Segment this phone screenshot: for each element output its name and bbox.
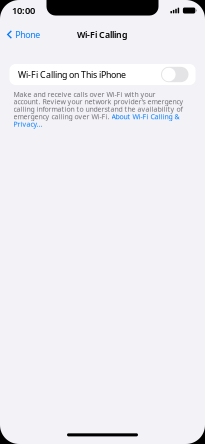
button[interactable]: Wi-Fi Calling on This iPhone <box>9 64 195 85</box>
staticText: Wi-Fi Calling <box>77 28 128 40</box>
staticText: Wi-Fi Calling on This iPhone <box>18 68 126 80</box>
button[interactable]: About Wi-Fi Calling & Privacy <box>13 89 183 129</box>
staticText: Phone <box>15 28 40 40</box>
staticText: Make and receive calls over Wi-Fi with y… <box>13 89 183 129</box>
button[interactable]: Phone <box>0 23 46 45</box>
staticText: 10:00 <box>12 4 35 17</box>
